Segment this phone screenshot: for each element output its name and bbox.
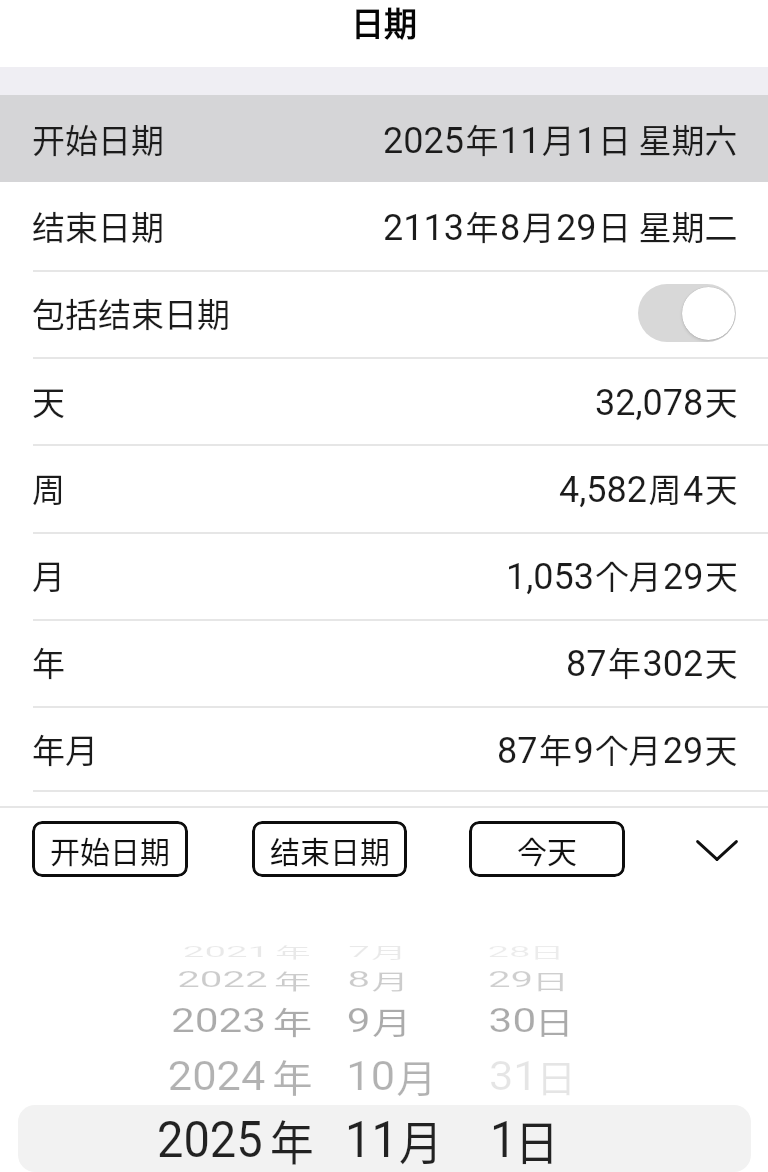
staticText: 29 <box>488 966 533 992</box>
staticText: 年 <box>32 638 65 686</box>
staticText: 31 <box>489 1052 538 1099</box>
staticText: 月 <box>32 551 65 599</box>
staticText: 结束日期 <box>32 202 164 250</box>
staticText: 日 <box>529 941 565 961</box>
button[interactable]: Collapse <box>681 814 753 886</box>
button[interactable]: Include end date <box>638 284 736 342</box>
staticText: 年 <box>272 1048 313 1103</box>
staticText: 月 <box>396 1048 437 1103</box>
staticText: 包括结束日期 <box>32 289 230 337</box>
staticText: 年 <box>274 964 312 994</box>
staticText: 日 <box>532 964 569 994</box>
staticText: 月 <box>399 1106 443 1172</box>
staticText: 87 年 9 个月 29 天 <box>497 725 738 773</box>
staticText: 28 <box>487 942 531 960</box>
staticText: 年 <box>270 1106 314 1172</box>
button[interactable]: Year <box>150 930 320 1172</box>
staticText: 日期 <box>351 0 417 46</box>
staticText: 9 <box>347 1001 371 1040</box>
staticText: 1 <box>490 1110 517 1169</box>
staticText: 月 <box>372 998 411 1043</box>
staticText: 月 <box>371 964 409 994</box>
staticText: 年 <box>273 998 312 1043</box>
button[interactable]: Month <box>330 930 460 1172</box>
button[interactable]: 年 <box>0 618 768 705</box>
staticText: 2022 <box>177 966 268 992</box>
staticText: 2025 <box>157 1110 263 1169</box>
staticText: 结束日期 <box>270 828 390 871</box>
button[interactable]: 年月 <box>0 705 768 792</box>
staticText: 30 <box>489 1001 536 1040</box>
button[interactable]: Day <box>470 930 590 1172</box>
button[interactable]: 开始日期 <box>32 821 188 877</box>
staticText: 2024 <box>168 1052 266 1099</box>
staticText: 7 <box>348 942 370 960</box>
button[interactable] <box>18 1105 751 1172</box>
button[interactable]: 包括结束日期 <box>0 269 768 356</box>
button[interactable]: 周 <box>0 444 768 531</box>
staticText: 1,053 个月 29 天 <box>506 551 738 599</box>
button[interactable]: 月 <box>0 531 768 618</box>
staticText: 开始日期 <box>50 828 170 871</box>
staticText: 开始日期 <box>32 115 164 163</box>
staticText: 4,582 周 4 天 <box>559 464 738 512</box>
staticText: 天 <box>32 377 65 425</box>
staticText: 年 <box>275 941 311 961</box>
staticText: 11 <box>345 1110 398 1169</box>
staticText: 2023 <box>171 1001 266 1040</box>
staticText: 10 <box>346 1052 395 1099</box>
staticText: 年月 <box>32 725 98 773</box>
staticText: 2021 <box>183 942 269 960</box>
button[interactable]: 开始日期 <box>0 95 768 182</box>
button[interactable]: 今天 <box>469 821 625 877</box>
staticText: 周 <box>32 464 65 512</box>
staticText: 日 <box>535 998 574 1043</box>
button[interactable]: 天 <box>0 357 768 444</box>
button[interactable]: 结束日期 <box>252 821 407 877</box>
staticText: 2113 年 8 月 29 日 星期二 <box>383 202 738 250</box>
staticText: 今天 <box>517 828 577 871</box>
staticText: 8 <box>347 966 370 992</box>
staticText: 2025 年 11 月 1 日 星期六 <box>383 115 738 163</box>
staticText: 32,078 天 <box>595 377 738 425</box>
button[interactable]: 结束日期 <box>0 182 768 269</box>
staticText: 87 年 302 天 <box>566 638 738 686</box>
staticText: 月 <box>371 941 407 961</box>
staticText: 日 <box>536 1048 577 1103</box>
staticText: 日 <box>515 1106 559 1172</box>
